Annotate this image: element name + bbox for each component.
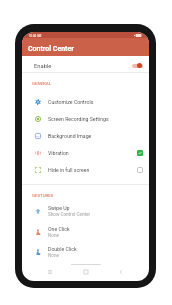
button[interactable]: Double Click — [22, 241, 149, 262]
staticText: 10:04 AM — [29, 34, 42, 37]
staticText: Show Control Center — [48, 212, 90, 217]
staticText: None — [48, 253, 59, 258]
button[interactable]: Customize Controls — [22, 93, 149, 110]
button[interactable]: Hide in full screen — [22, 161, 149, 178]
button[interactable]: Vibration — [22, 144, 149, 161]
staticText: Enable — [34, 63, 132, 70]
staticText: Screen Recording Settings — [48, 116, 143, 122]
staticText: Swipe Up — [48, 205, 70, 211]
staticText: Customize Controls — [48, 99, 143, 105]
button[interactable]: Swipe Up — [22, 200, 149, 221]
staticText: Vibration — [48, 150, 137, 156]
button[interactable]: Enable — [22, 58, 149, 74]
staticText: GENERAL — [32, 81, 52, 86]
staticText: None — [48, 233, 59, 238]
button[interactable]: Screen Recording Settings — [22, 110, 149, 127]
button[interactable]: Back — [114, 266, 128, 278]
staticText: Double Click — [48, 246, 77, 252]
staticText: GESTURES — [32, 193, 54, 198]
button[interactable]: Home — [79, 266, 93, 278]
button[interactable]: One Click — [22, 221, 149, 242]
staticText: Background Image — [48, 133, 143, 139]
button[interactable]: Recents — [43, 266, 57, 278]
staticText: Hide in full screen — [48, 167, 137, 173]
staticText: One Click — [48, 226, 70, 232]
button[interactable]: Background Image — [22, 127, 149, 144]
staticText: Control Center — [28, 45, 74, 53]
